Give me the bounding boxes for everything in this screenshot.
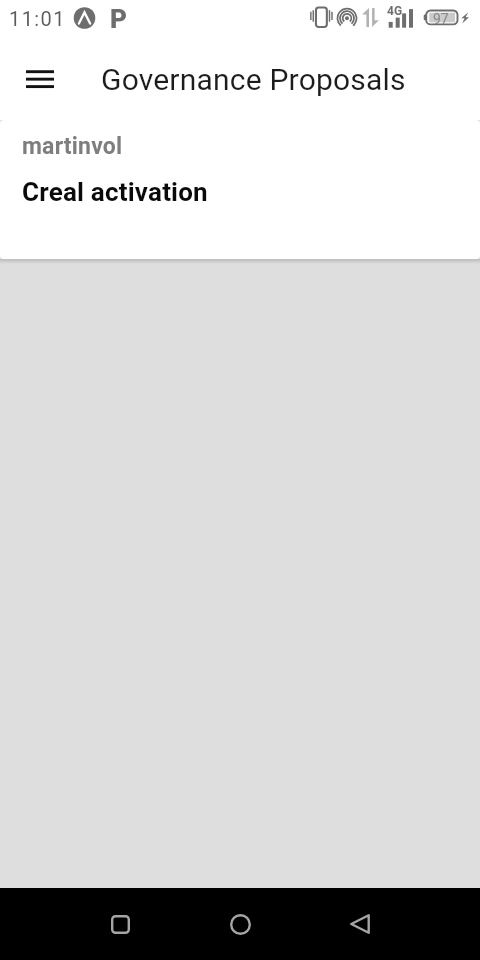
staticText: 11:01 [9, 7, 66, 30]
staticText: 4G [387, 4, 403, 18]
button[interactable]: Home [204, 888, 276, 960]
staticText: Creal activation [22, 177, 208, 207]
button[interactable]: Open navigation menu [9, 47, 71, 111]
staticText: Governance Proposals [101, 62, 406, 97]
staticText: P [110, 4, 127, 34]
button[interactable]: Recent apps [84, 888, 156, 960]
button[interactable]: Back [324, 888, 396, 960]
staticText: martinvol [22, 133, 123, 160]
button[interactable]: martinvol [0, 120, 480, 259]
staticText: 97 [433, 11, 449, 27]
